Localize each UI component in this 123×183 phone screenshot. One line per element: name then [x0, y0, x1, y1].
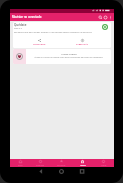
- button[interactable]: Search: [98, 15, 103, 20]
- button[interactable]: WhatsApp: [101, 23, 108, 30]
- staticText: Ayuda: [101, 164, 107, 166]
- button[interactable]: COMPARTIR: [32, 39, 47, 46]
- staticText: Nueva cuenta: [61, 52, 77, 55]
- staticText: COMPARTIR: [33, 43, 46, 46]
- button[interactable]: More options: [108, 15, 113, 20]
- button[interactable]: Inicio: [10, 159, 30, 167]
- staticText: Movistar no conectado: [12, 15, 42, 19]
- button[interactable]: Ayuda: [93, 159, 114, 167]
- staticText: SABER MÁS: [76, 43, 88, 46]
- button[interactable]: Tienda: [72, 159, 93, 167]
- staticText: Mi cuenta: [57, 164, 66, 166]
- button[interactable]: Quédate: [13, 22, 111, 48]
- staticText: Quédate: [14, 23, 27, 27]
- button[interactable]: Nueva cuenta: [13, 49, 111, 64]
- staticText: hace 2 h: [14, 27, 22, 30]
- staticText: Añade tu cuenta de Twitter para estar in…: [34, 56, 103, 59]
- button[interactable]: Notifications: [103, 15, 108, 20]
- staticText: Tienda: [80, 164, 86, 166]
- staticText: Inicio: [18, 164, 23, 166]
- button[interactable]: SABER MÁS: [75, 39, 89, 46]
- staticText: Consumo: [36, 164, 45, 166]
- button[interactable]: Consumo: [30, 159, 51, 167]
- staticText: Recuerda que para poder acceder a las ti…: [14, 31, 92, 34]
- button[interactable]: Mi cuenta: [51, 159, 72, 167]
